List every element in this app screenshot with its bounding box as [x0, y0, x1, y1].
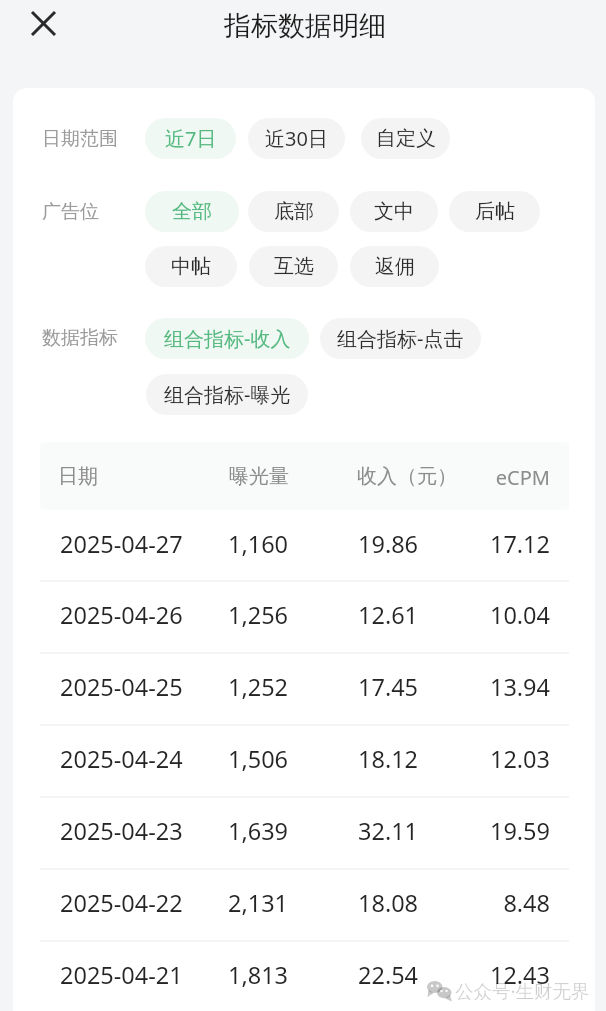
- staticText: 18.08: [358, 887, 419, 919]
- staticText: 收入（元）: [357, 464, 457, 489]
- staticText: 全部: [172, 199, 212, 224]
- button[interactable]: 2025-04-21: [40, 941, 569, 1011]
- button[interactable]: 组合指标-点击: [320, 318, 481, 359]
- staticText: 32.11: [358, 815, 419, 847]
- staticText: 1,639: [228, 815, 289, 847]
- staticText: 1,813: [228, 959, 289, 991]
- staticText: 广告位: [42, 200, 99, 224]
- button[interactable]: 全部: [145, 191, 239, 232]
- staticText: 曝光量: [229, 464, 289, 489]
- button[interactable]: 2025-04-26: [40, 581, 569, 653]
- staticText: 近30日: [265, 125, 328, 152]
- staticText: 组合指标-点击: [337, 325, 464, 352]
- staticText: 后帖: [475, 199, 515, 224]
- staticText: eCPM: [430, 464, 550, 491]
- staticText: 指标数据明细: [224, 9, 386, 43]
- button[interactable]: 2025-04-24: [40, 725, 569, 797]
- staticText: 17.12: [440, 528, 550, 560]
- staticText: 组合指标-曝光: [164, 381, 291, 408]
- staticText: 2,131: [228, 887, 289, 919]
- staticText: 2025-04-21: [60, 959, 183, 991]
- button[interactable]: 2025-04-25: [40, 653, 569, 725]
- staticText: 10.04: [440, 599, 550, 631]
- button[interactable]: 文中: [350, 191, 438, 232]
- button[interactable]: 2025-04-27: [40, 510, 569, 581]
- staticText: 17.45: [358, 671, 419, 703]
- staticText: 自定义: [376, 126, 436, 151]
- button[interactable]: 2025-04-23: [40, 797, 569, 869]
- staticText: 8.48: [440, 887, 550, 919]
- staticText: 12.61: [358, 599, 419, 631]
- staticText: 22.54: [358, 959, 419, 991]
- staticText: 日期范围: [42, 127, 118, 151]
- staticText: 1,256: [228, 599, 289, 631]
- button[interactable]: 互选: [249, 246, 338, 287]
- staticText: 18.12: [358, 743, 419, 775]
- button[interactable]: 近7日: [145, 118, 236, 159]
- button[interactable]: 返佣: [350, 246, 439, 287]
- staticText: 返佣: [375, 254, 415, 279]
- staticText: 12.43: [440, 959, 550, 991]
- staticText: 1,252: [228, 671, 289, 703]
- staticText: 2025-04-23: [60, 815, 183, 847]
- staticText: 中帖: [171, 254, 211, 279]
- staticText: 数据指标: [42, 326, 118, 350]
- button[interactable]: 底部: [248, 191, 339, 232]
- staticText: 互选: [274, 254, 314, 279]
- staticText: 19.59: [440, 815, 550, 847]
- staticText: 1,160: [228, 528, 289, 560]
- staticText: 文中: [374, 199, 414, 224]
- button[interactable]: Close: [20, 0, 67, 47]
- staticText: 底部: [274, 199, 314, 224]
- button[interactable]: 中帖: [145, 246, 237, 287]
- button[interactable]: 近30日: [248, 118, 345, 159]
- button[interactable]: 后帖: [449, 191, 540, 232]
- button[interactable]: 自定义: [361, 118, 450, 159]
- button[interactable]: 2025-04-22: [40, 869, 569, 941]
- staticText: 2025-04-25: [60, 671, 183, 703]
- staticText: 2025-04-27: [60, 528, 183, 560]
- staticText: 19.86: [358, 528, 419, 560]
- staticText: 13.94: [440, 671, 550, 703]
- staticText: 2025-04-26: [60, 599, 183, 631]
- staticText: 近7日: [165, 125, 217, 152]
- staticText: 1,506: [228, 743, 289, 775]
- staticText: 日期: [58, 464, 98, 489]
- staticText: 12.03: [440, 743, 550, 775]
- staticText: 组合指标-收入: [164, 325, 291, 352]
- staticText: 2025-04-24: [60, 743, 183, 775]
- staticText: 2025-04-22: [60, 887, 183, 919]
- staticText: 公众号·生财无界: [455, 978, 590, 1003]
- button[interactable]: 组合指标-收入: [145, 318, 309, 359]
- button[interactable]: 组合指标-曝光: [146, 374, 308, 415]
